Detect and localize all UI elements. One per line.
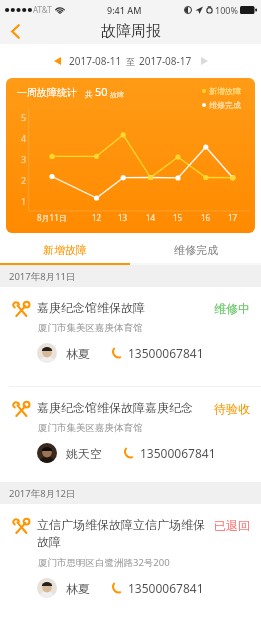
staticText: AT&T — [33, 4, 52, 15]
staticText: 姚天空 — [66, 446, 102, 461]
staticText: 故障 — [110, 90, 124, 99]
staticText: 2017年8月11日 — [9, 270, 76, 283]
staticText: 厦门市集美区嘉庚体育馆 — [38, 422, 143, 434]
staticText: 至 — [126, 56, 135, 67]
staticText: 16 — [201, 212, 211, 223]
button[interactable]: 嘉庚纪念馆维保故障 — [0, 287, 261, 386]
button[interactable]: Previous week — [49, 53, 65, 69]
staticText: 2017-08-17 — [139, 54, 192, 68]
staticText: 2017年8月12日 — [9, 487, 76, 500]
staticText: 14 — [146, 212, 156, 223]
staticText: 5 — [21, 111, 27, 123]
staticText: 维修中 — [214, 300, 250, 317]
staticText: 新增故障 — [43, 243, 87, 257]
staticText: 13500067841 — [128, 580, 204, 596]
staticText: 厦门市思明区白鹭洲路32号200 — [38, 556, 170, 569]
staticText: 嘉庚纪念馆维保故障 — [37, 299, 209, 316]
button[interactable]: 新增故障 — [0, 236, 130, 263]
staticText: 15 — [173, 212, 183, 223]
staticText: 新增故障 — [209, 86, 241, 96]
staticText: 故障周报 — [101, 22, 161, 41]
staticText: 8月11日 — [37, 212, 67, 223]
staticText: 2017-08-11 — [69, 54, 122, 68]
staticText: 9:41 AM — [107, 4, 142, 16]
staticText: 已退回 — [214, 517, 250, 534]
staticText: 林夏 — [66, 581, 90, 596]
staticText: 2 — [21, 174, 27, 186]
staticText: 13500067841 — [128, 345, 204, 361]
staticText: 4 — [21, 132, 27, 144]
staticText: 100% — [215, 4, 238, 16]
staticText: 17 — [228, 212, 238, 223]
button[interactable]: Back — [0, 19, 30, 44]
staticText: 1 — [21, 195, 27, 207]
button[interactable]: 维修完成 — [130, 236, 261, 263]
staticText: 3 — [21, 153, 27, 165]
staticText: 共 — [85, 89, 93, 99]
button[interactable]: 嘉庚纪念馆维保故障嘉庚纪念 — [0, 387, 261, 482]
button[interactable]: Next week — [196, 53, 212, 69]
staticText: 林夏 — [66, 346, 90, 361]
staticText: 13 — [118, 212, 128, 223]
staticText: 13500067841 — [140, 445, 216, 461]
staticText: 嘉庚纪念馆维保故障嘉庚纪念 — [37, 399, 209, 416]
staticText: 立信广场维保故障立信广场维保故障 — [37, 516, 209, 550]
staticText: 12 — [92, 212, 102, 223]
button[interactable]: 立信广场维保故障立信广场维保故障 — [0, 504, 261, 621]
staticText: 50 — [95, 84, 108, 99]
staticText: 维修完成 — [209, 100, 241, 110]
staticText: 一周故障统计 — [17, 86, 77, 99]
staticText: 维修完成 — [174, 243, 218, 257]
staticText: 待验收 — [214, 400, 250, 417]
staticText: 厦门市集美区嘉庚体育馆 — [38, 322, 143, 334]
